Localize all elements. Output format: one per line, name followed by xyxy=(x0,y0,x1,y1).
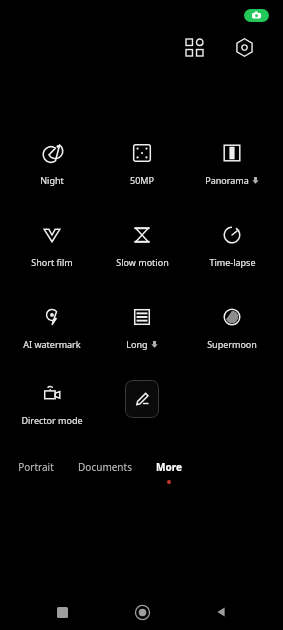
button[interactable]: Time-lapse xyxy=(187,222,277,268)
button[interactable]: More xyxy=(150,456,188,488)
button[interactable]: Slow motion xyxy=(97,222,187,268)
other: Camera in use xyxy=(244,9,269,22)
button[interactable]: Edit modes xyxy=(125,380,159,418)
button[interactable]: Recents xyxy=(44,594,80,630)
button[interactable]: Director mode xyxy=(21,380,83,426)
staticText: More xyxy=(156,460,182,474)
staticText: Documents xyxy=(78,460,132,474)
staticText: Night xyxy=(40,174,64,186)
button[interactable]: Camera modes xyxy=(177,30,211,64)
staticText: Long xyxy=(126,338,148,350)
staticText: Panorama xyxy=(205,174,249,186)
staticText: AI watermark xyxy=(23,338,81,350)
staticText: Supermoon xyxy=(207,338,257,350)
button[interactable]: Home xyxy=(124,594,160,630)
button[interactable]: Documents xyxy=(72,456,138,478)
staticText: Short film xyxy=(31,256,73,268)
staticText: Slow motion xyxy=(116,256,169,268)
button[interactable]: Panorama xyxy=(187,140,277,186)
button[interactable]: Portrait xyxy=(12,456,60,478)
button[interactable]: Long xyxy=(97,304,187,350)
staticText: Time-lapse xyxy=(209,256,256,268)
button[interactable]: Settings xyxy=(227,30,261,64)
button[interactable]: Short film xyxy=(6,222,97,268)
staticText: 50MP xyxy=(130,174,154,186)
button[interactable]: Back xyxy=(203,594,239,630)
staticText: Director mode xyxy=(21,414,83,426)
button[interactable]: Night xyxy=(6,140,97,186)
button[interactable]: AI watermark xyxy=(6,304,97,350)
button[interactable]: Supermoon xyxy=(187,304,277,350)
staticText: Portrait xyxy=(18,460,54,474)
button[interactable]: 50MP xyxy=(97,140,187,186)
